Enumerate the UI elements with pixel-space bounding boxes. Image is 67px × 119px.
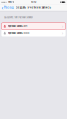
button[interactable]: Торговая запись ИП (1, 23, 66, 30)
staticText: 10:12 (31, 1, 36, 3)
button[interactable]: Торговая запись ООО (1, 30, 66, 36)
staticText: Торговая запись ООО (8, 32, 30, 34)
staticText: Торговая запись ИП (8, 25, 28, 28)
staticText: Tele2 (8, 1, 12, 3)
staticText: ‹ (1, 5, 3, 10)
staticText: Назад (4, 6, 14, 9)
staticText: › (62, 24, 64, 29)
staticText: › (62, 31, 64, 35)
staticText: ВЫБЕРИТЕ ТИП УЧЕТНОЙ ЗАПИСИ (4, 16, 32, 19)
staticText: Создать учетную запись (15, 6, 51, 9)
button[interactable]: ‹ (0, 4, 15, 11)
